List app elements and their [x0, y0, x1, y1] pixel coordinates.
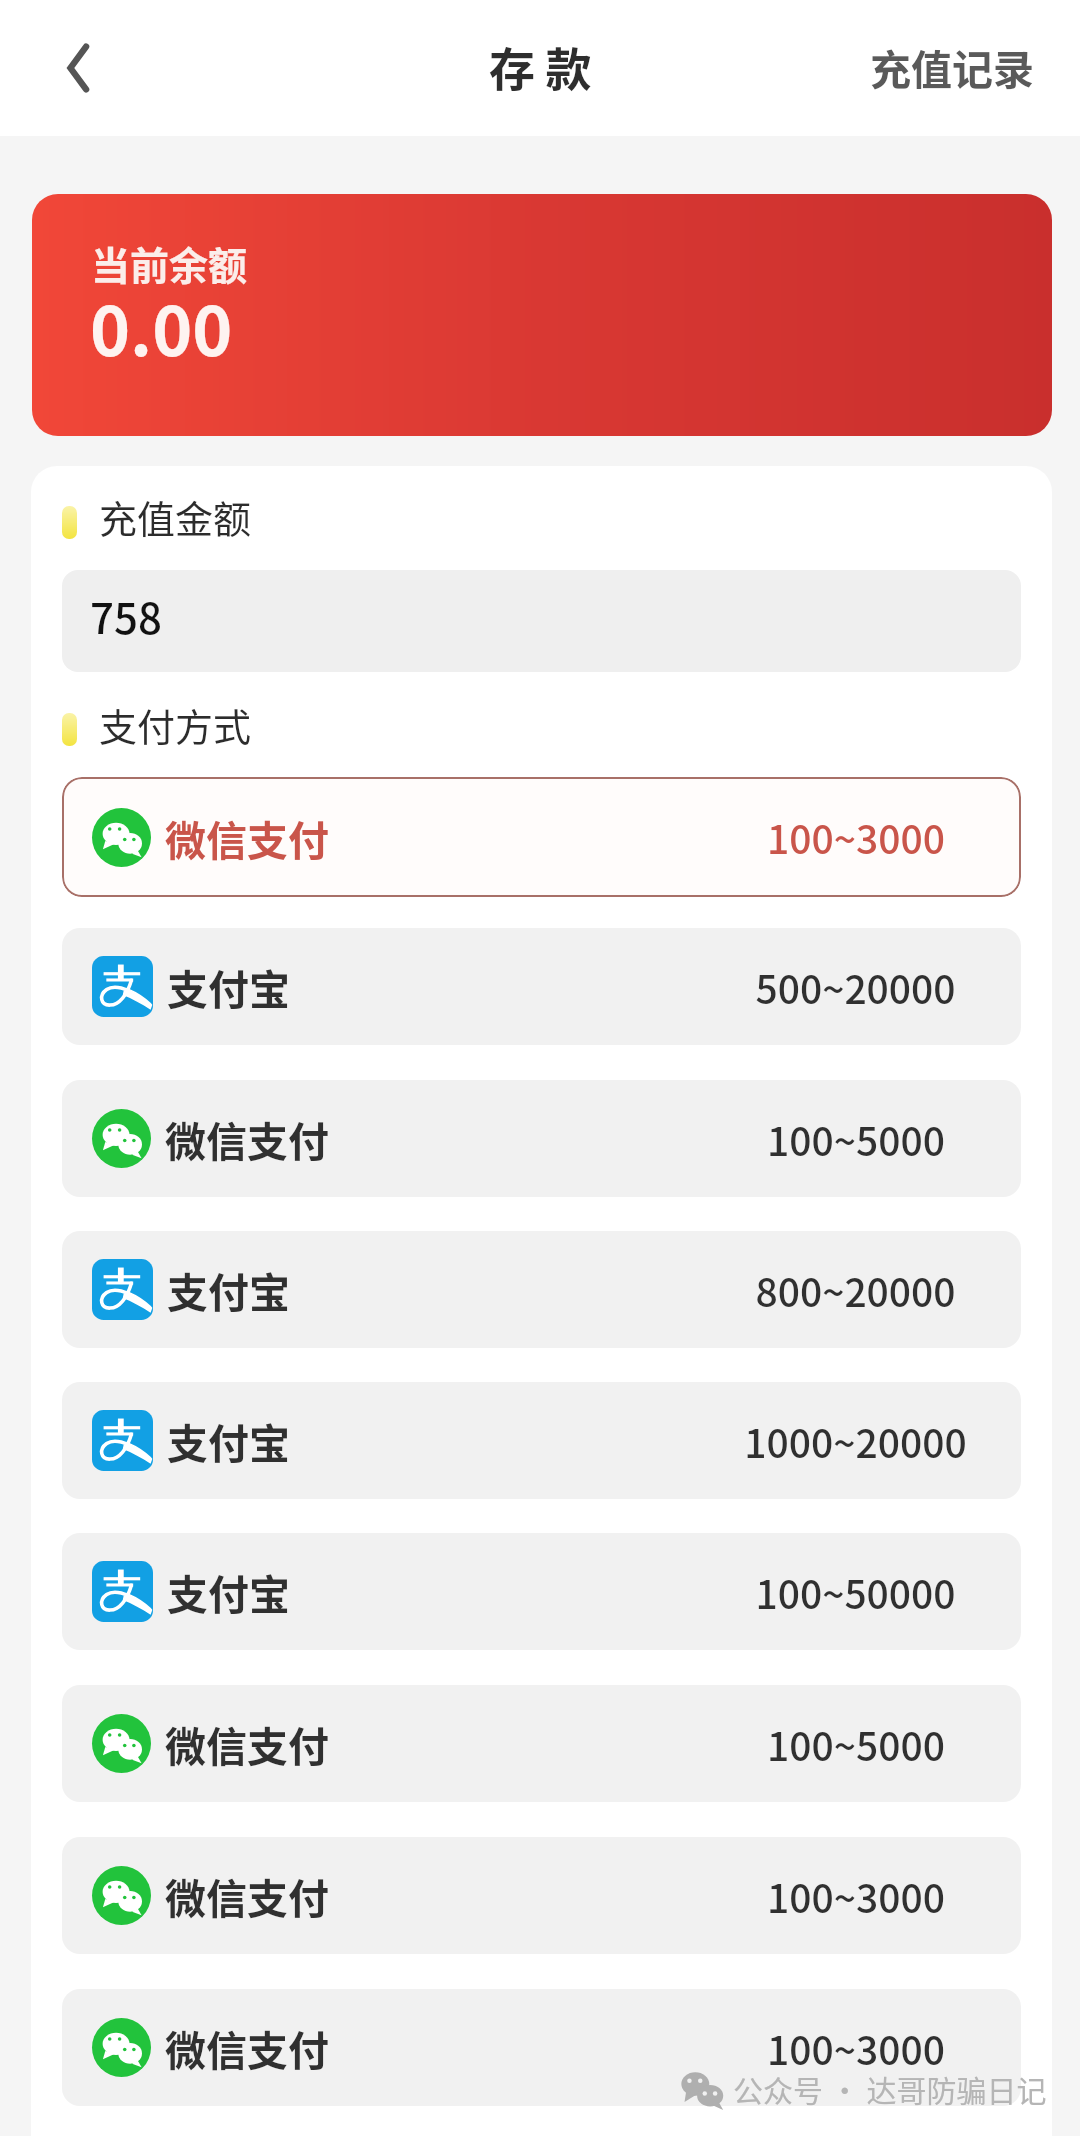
staticText: 支付宝 — [167, 1562, 290, 1621]
button[interactable]: 微信支付 — [62, 1080, 1021, 1197]
button[interactable]: 微信支付 — [62, 777, 1021, 897]
button[interactable]: Back — [38, 28, 118, 108]
staticText: 公众号 · 达哥防骗日记 — [733, 2067, 1047, 2110]
staticText: 充值金额 — [99, 489, 252, 544]
button[interactable]: 支付宝 — [62, 1533, 1021, 1650]
staticText: 100~3000 — [767, 2020, 945, 2076]
button[interactable]: 758 — [62, 570, 1021, 672]
staticText: 当前余额 — [91, 235, 248, 291]
staticText: 100~3000 — [767, 809, 945, 865]
staticText: 0.00 — [90, 277, 233, 375]
staticText: 微信支付 — [165, 1866, 329, 1925]
staticText: 存 款 — [489, 33, 592, 100]
staticText: 支付方式 — [99, 697, 252, 752]
staticText: 100~5000 — [767, 1111, 945, 1167]
staticText: 支付宝 — [167, 1260, 290, 1319]
staticText: 支付宝 — [167, 1411, 290, 1470]
staticText: 微信支付 — [165, 2018, 329, 2077]
staticText: 100~3000 — [767, 1868, 945, 1924]
button[interactable]: 支付宝 — [62, 1231, 1021, 1348]
staticText: 1000~20000 — [744, 1413, 967, 1469]
button[interactable]: 微信支付 — [62, 1685, 1021, 1802]
staticText: 500~20000 — [755, 959, 956, 1015]
staticText: 100~5000 — [767, 1716, 945, 1772]
button[interactable]: 支付宝 — [62, 928, 1021, 1045]
staticText: 758 — [90, 585, 162, 646]
staticText: 800~20000 — [755, 1262, 956, 1318]
staticText: 微信支付 — [165, 1109, 329, 1168]
staticText: 支付宝 — [167, 957, 290, 1016]
button[interactable]: 支付宝 — [62, 1382, 1021, 1499]
button[interactable]: 微信支付 — [62, 1837, 1021, 1954]
staticText: 微信支付 — [165, 1714, 329, 1773]
button[interactable]: 微信支付 — [62, 1989, 1021, 2106]
staticText: 充值记录 — [870, 37, 1034, 96]
button[interactable]: 充值记录 — [870, 39, 1034, 98]
staticText: 100~50000 — [755, 1564, 956, 1620]
staticText: 微信支付 — [165, 808, 329, 867]
